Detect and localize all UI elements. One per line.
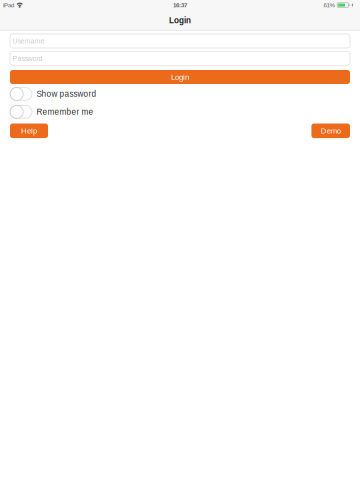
button[interactable]: Show password [10, 87, 350, 101]
staticText: Login [171, 72, 189, 81]
staticText: Login [169, 16, 191, 25]
staticText: Demo [321, 126, 341, 135]
staticText: iPad [3, 2, 14, 9]
button[interactable]: Demo [311, 123, 350, 138]
staticText: Show password [36, 89, 96, 99]
staticText: Help [21, 126, 37, 135]
button[interactable]: Help [10, 123, 48, 138]
staticText: Remember me [36, 107, 93, 116]
staticText: Username [13, 37, 45, 45]
staticText: Password [13, 55, 43, 62]
staticText: 61% [324, 2, 335, 9]
button[interactable]: Login [10, 70, 350, 84]
button[interactable]: Remember me [10, 105, 350, 119]
staticText: 16:37 [173, 2, 187, 9]
